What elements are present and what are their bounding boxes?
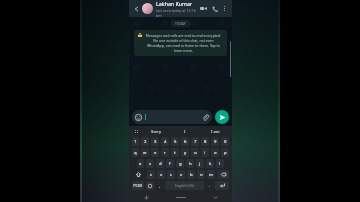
staticText: c	[170, 172, 173, 178]
button[interactable]: Lakhan Kumar	[156, 0, 198, 17]
button[interactable]: 5	[171, 137, 179, 146]
staticText: 0	[224, 139, 227, 145]
staticText: a	[139, 161, 142, 167]
staticText: n	[200, 172, 203, 178]
button[interactable]: Emoji keyboard	[146, 181, 154, 190]
button[interactable]: Send	[215, 110, 229, 124]
staticText: last seen today at 12:16 pm	[156, 8, 198, 17]
button[interactable]: m	[207, 170, 215, 179]
button[interactable]: Hide keyboard	[129, 192, 164, 202]
staticText: v	[180, 172, 183, 178]
button[interactable]: Voice call	[209, 3, 220, 14]
staticText: 6	[184, 139, 187, 145]
button[interactable]: Back	[132, 4, 141, 13]
button[interactable]: p	[221, 148, 229, 157]
staticText: o	[214, 150, 217, 156]
staticText: y	[184, 150, 187, 156]
staticText: 3	[154, 139, 157, 145]
staticText: Messages and calls are end-to-end encryp…	[144, 33, 223, 53]
button[interactable]: q	[132, 148, 139, 157]
staticText: z	[150, 172, 152, 178]
button[interactable]: Video call	[198, 3, 209, 14]
staticText: 7	[194, 139, 197, 145]
button[interactable]: Emoji	[132, 110, 212, 124]
button[interactable]: a	[137, 159, 144, 168]
button[interactable]: Contact photo	[142, 3, 153, 14]
button[interactable]: x	[157, 170, 165, 179]
staticText: i	[204, 150, 206, 156]
button[interactable]: w	[141, 148, 149, 157]
staticText: .	[209, 183, 211, 189]
button[interactable]: k	[206, 159, 214, 168]
button[interactable]: I am	[200, 127, 230, 135]
button[interactable]: 1	[132, 137, 139, 146]
button[interactable]: i	[201, 148, 209, 157]
staticText: r	[164, 150, 166, 156]
button[interactable]: Messages and calls are end-to-end encryp…	[134, 30, 227, 56]
button[interactable]: l	[216, 159, 224, 168]
button[interactable]: Recents	[198, 192, 232, 202]
button[interactable]: h	[186, 159, 194, 168]
button[interactable]: g	[176, 159, 184, 168]
button[interactable]: r	[161, 148, 169, 157]
button[interactable]: t	[171, 148, 179, 157]
button[interactable]: 2	[141, 137, 149, 146]
staticText: 1	[134, 139, 137, 145]
button[interactable]: 6	[181, 137, 189, 146]
staticText: ?123	[133, 183, 143, 189]
button[interactable]: c	[167, 170, 175, 179]
staticText: l	[219, 161, 221, 167]
staticText: w	[143, 150, 147, 156]
button[interactable]: ?123	[132, 181, 144, 190]
staticText: d	[159, 161, 162, 167]
button[interactable]: u	[191, 148, 199, 157]
staticText: g	[179, 161, 182, 167]
staticText: q	[134, 150, 137, 156]
button[interactable]: o	[211, 148, 219, 157]
staticText: u	[194, 150, 197, 156]
staticText: ,	[159, 183, 161, 189]
staticText: b	[190, 172, 193, 178]
button[interactable]: e	[151, 148, 159, 157]
button[interactable]: Shift	[132, 170, 145, 179]
button[interactable]: More options	[220, 4, 229, 13]
staticText: 2	[144, 139, 147, 145]
button[interactable]: d	[156, 159, 164, 168]
staticText: I	[184, 129, 186, 134]
staticText: 9	[214, 139, 217, 145]
button[interactable]: 3	[151, 137, 159, 146]
button[interactable]: ,	[155, 181, 164, 190]
button[interactable]: I	[170, 127, 200, 135]
button[interactable]: Home	[164, 192, 198, 202]
button[interactable]: n	[197, 170, 205, 179]
other: Attach	[202, 114, 209, 121]
button[interactable]: v	[177, 170, 185, 179]
button[interactable]: s	[146, 159, 154, 168]
staticText: Lakhan Kumar	[156, 0, 193, 7]
staticText: j	[199, 161, 201, 167]
staticText: f	[169, 161, 171, 167]
button[interactable]: 4	[161, 137, 169, 146]
button[interactable]: 0	[221, 137, 229, 146]
staticText: 4	[164, 139, 167, 145]
staticText: TODAY	[175, 21, 186, 26]
button[interactable]: j	[196, 159, 204, 168]
button[interactable]: Enter	[215, 181, 229, 190]
staticText: English (US)	[175, 183, 194, 188]
button[interactable]: 7	[191, 137, 199, 146]
staticText: m	[209, 172, 213, 178]
button[interactable]: English (US)	[165, 181, 204, 190]
button[interactable]: z	[147, 170, 155, 179]
button[interactable]: y	[181, 148, 189, 157]
button[interactable]: f	[166, 159, 174, 168]
button[interactable]: 9	[211, 137, 219, 146]
staticText: Sorry	[151, 129, 161, 134]
button[interactable]: 8	[201, 137, 209, 146]
button[interactable]: b	[187, 170, 195, 179]
button[interactable]: Toolbar	[131, 127, 141, 135]
button[interactable]: Sorry	[141, 127, 170, 135]
button[interactable]: .	[205, 181, 214, 190]
staticText: p	[224, 150, 227, 156]
button[interactable]: Backspace	[217, 170, 229, 179]
staticText: t	[174, 150, 176, 156]
